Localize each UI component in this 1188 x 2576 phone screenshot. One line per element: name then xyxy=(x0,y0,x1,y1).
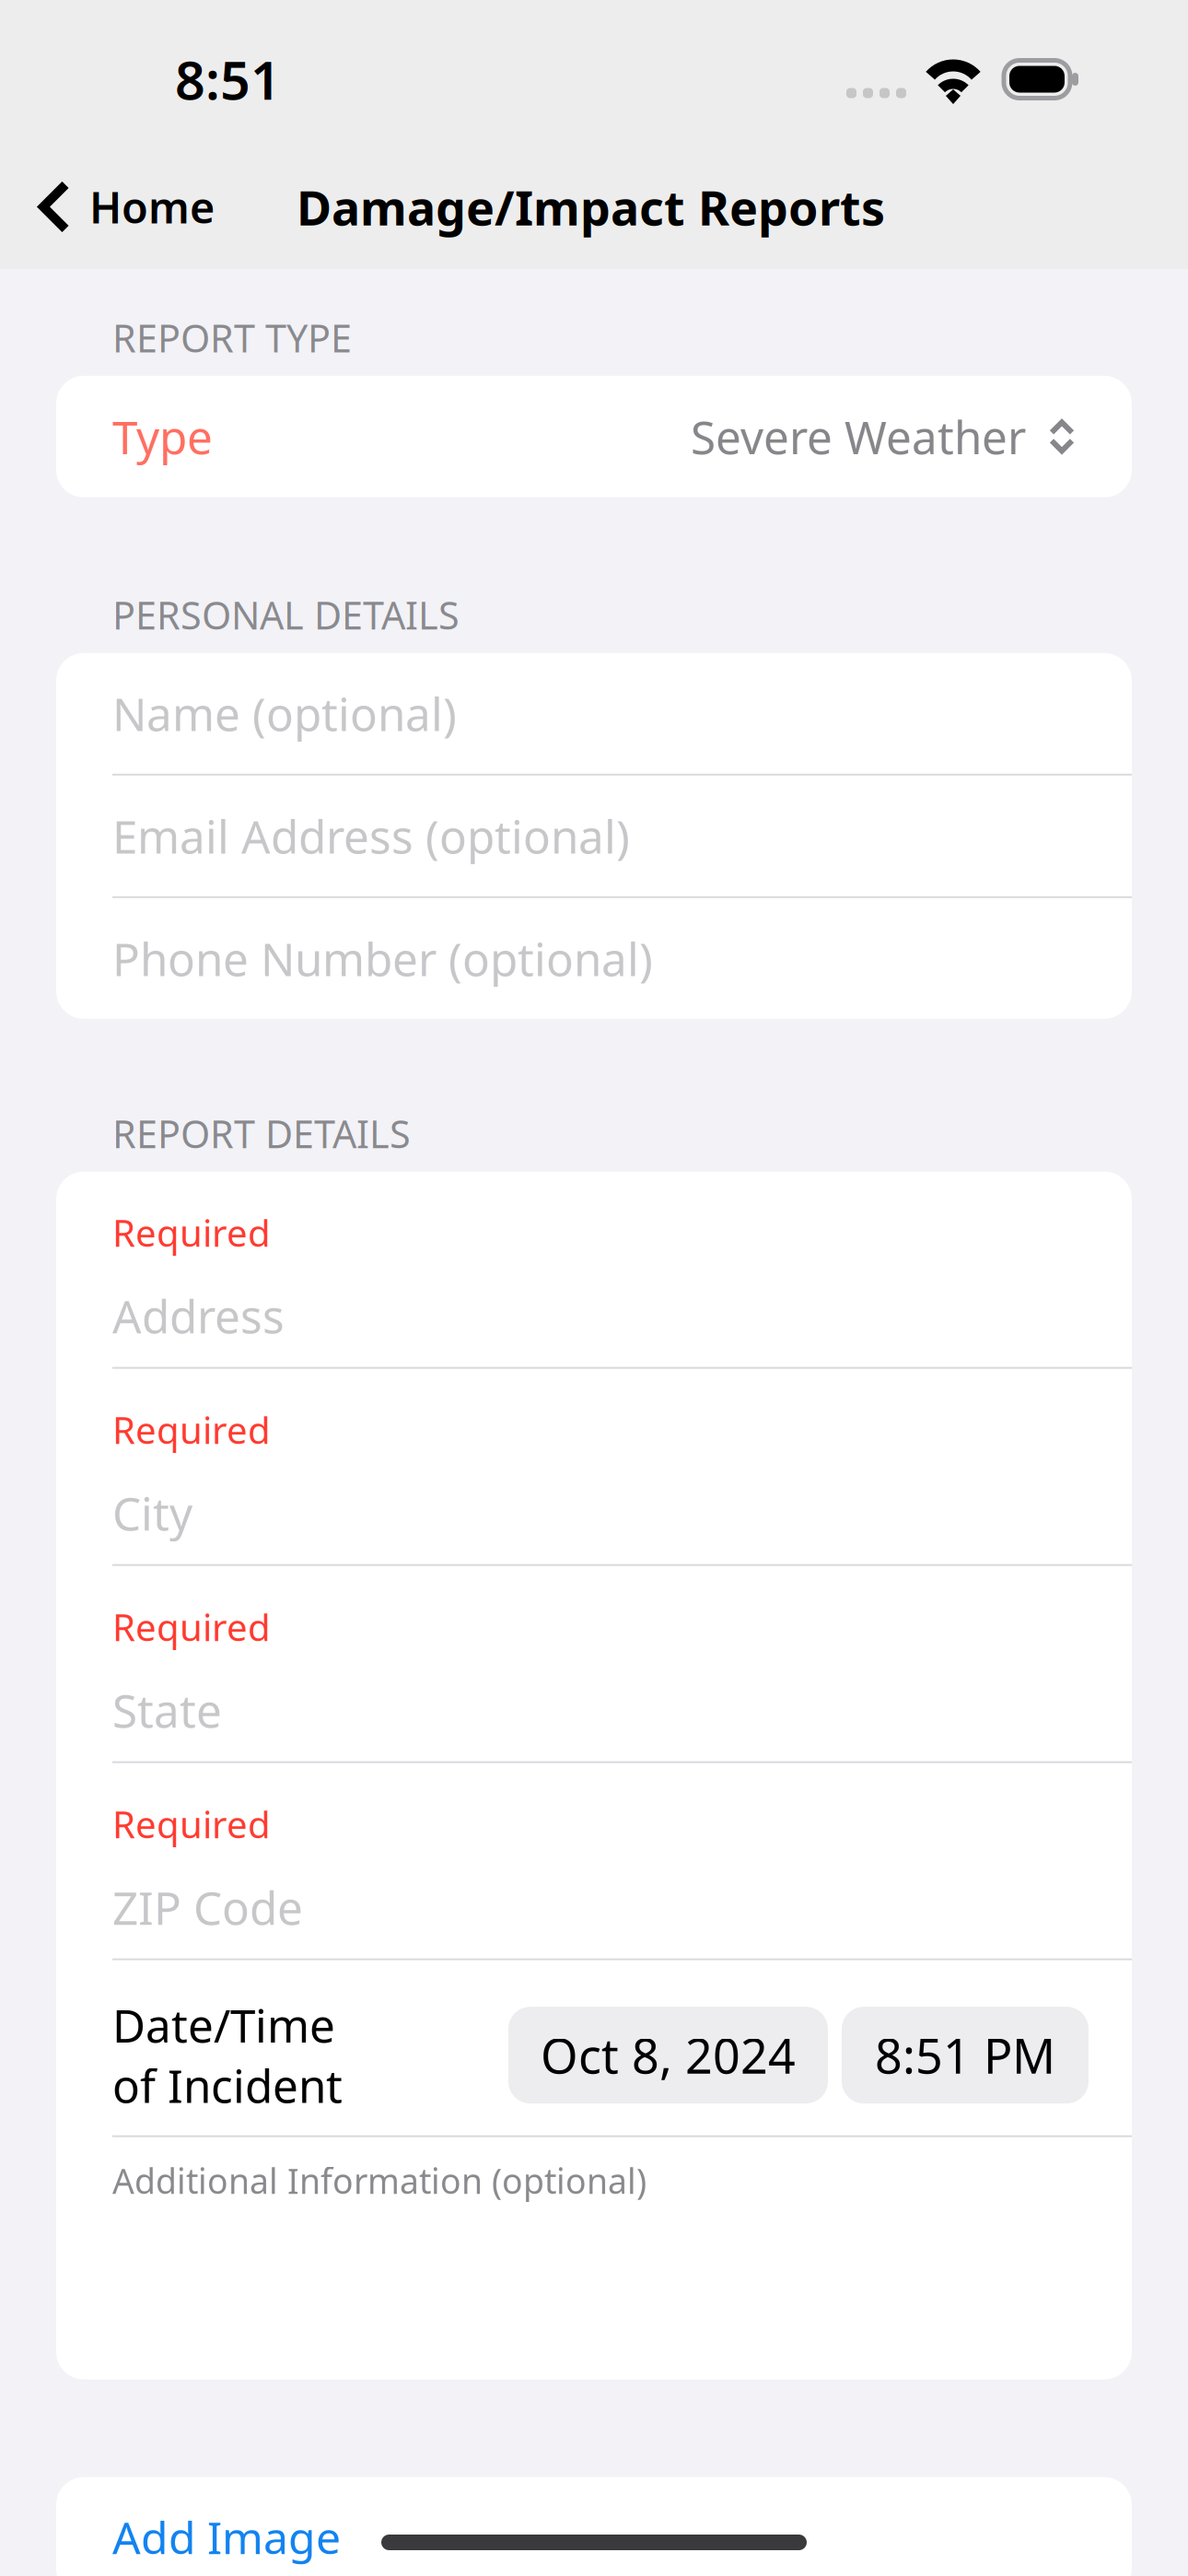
staticText: PERSONAL DETAILS xyxy=(112,590,460,640)
button[interactable]: Type xyxy=(56,376,1132,497)
staticText: Address xyxy=(112,1286,285,1346)
staticText: REPORT DETAILS xyxy=(112,1108,411,1159)
staticText: Email Address (optional) xyxy=(112,806,630,866)
staticText: Damage/Impact Reports xyxy=(297,175,885,239)
button[interactable]: Add Image xyxy=(56,2477,1132,2576)
staticText: 8:51 PM xyxy=(875,2023,1055,2087)
staticText: Required xyxy=(112,1602,271,1651)
staticText: State xyxy=(112,1680,222,1740)
button[interactable]: Home xyxy=(0,156,237,258)
staticText: REPORT TYPE xyxy=(112,312,352,363)
staticText: Phone Number (optional) xyxy=(112,928,653,989)
staticText: Required xyxy=(112,1208,271,1257)
staticText: ZIP Code xyxy=(112,1877,303,1937)
staticText: Date/Time of Incident xyxy=(112,1995,343,2116)
staticText: Additional Information (optional) xyxy=(112,2158,646,2203)
staticText: Oct 8, 2024 xyxy=(541,2023,796,2087)
staticText: Home xyxy=(89,178,215,235)
staticText: Required xyxy=(112,1405,271,1454)
staticText: Severe Weather xyxy=(691,406,1026,467)
staticText: Required xyxy=(112,1799,271,1848)
button[interactable]: Oct 8, 2024 xyxy=(508,2007,828,2104)
staticText: Type xyxy=(112,406,213,467)
button[interactable]: 8:51 PM xyxy=(842,2007,1089,2104)
staticText: City xyxy=(112,1483,192,1543)
staticText: 8:51 xyxy=(175,44,281,114)
staticText: Name (optional) xyxy=(112,683,457,744)
staticText: Add Image xyxy=(112,2508,341,2566)
